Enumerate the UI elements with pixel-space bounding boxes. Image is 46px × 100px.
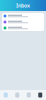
button[interactable]: Tab (11, 92, 23, 97)
staticText: Inbox (16, 2, 30, 9)
button[interactable] (2, 19, 44, 25)
button[interactable] (2, 13, 44, 19)
button[interactable] (2, 25, 44, 31)
button[interactable]: Tab (23, 92, 34, 97)
button[interactable]: Tab (0, 92, 11, 97)
button[interactable]: Tab (34, 92, 46, 97)
